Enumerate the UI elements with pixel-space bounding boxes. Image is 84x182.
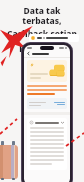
other: Coins: [49, 64, 65, 78]
staticText: Cashback setiap: [7, 28, 77, 40]
staticText: pembelian: [19, 41, 65, 53]
button[interactable]: [27, 118, 67, 170]
button[interactable]: Back: [27, 52, 67, 55]
button[interactable]: Cashback reward: [29, 34, 79, 42]
button[interactable]: Coins: [27, 60, 67, 82]
other: Back: [27, 52, 30, 55]
other: Cashback reward: [31, 36, 35, 40]
staticText: Data tak terbatas,: [5, 5, 79, 27]
button[interactable]: [27, 98, 67, 109]
